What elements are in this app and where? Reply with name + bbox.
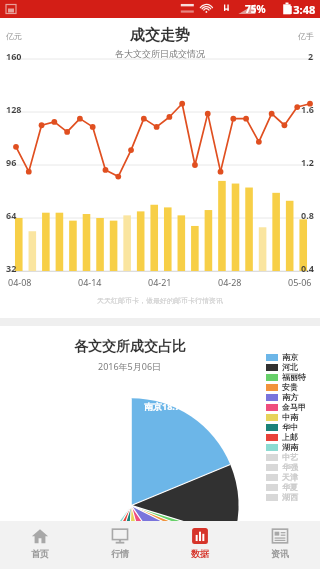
staticText: 南京18.77% (144, 400, 194, 412)
staticText: 2016年5月06日 (98, 360, 162, 372)
staticText: 13:48 (287, 2, 316, 17)
staticText: 行情 (111, 548, 129, 559)
staticText: 128 (6, 103, 22, 115)
staticText: 75% (245, 2, 266, 16)
staticText: 64 (6, 209, 17, 221)
staticText: 上邮 (282, 432, 298, 442)
staticText: 160 (6, 50, 22, 62)
staticText: 05-06 (288, 276, 312, 288)
staticText: 各文交所成交占比 (74, 338, 186, 356)
staticText: 成交走势 (130, 26, 190, 45)
staticText: 中南 (282, 412, 298, 422)
staticText: 0.4 (301, 262, 314, 274)
staticText: 华强 (282, 462, 298, 472)
staticText: 湖西 (282, 492, 298, 502)
staticText: 华夏 (282, 482, 298, 492)
staticText: 32 (6, 262, 17, 274)
staticText: 亿元 (6, 31, 22, 41)
staticText: 金马甲 (282, 402, 306, 412)
staticText: 华中 (282, 422, 298, 432)
staticText: 资讯 (271, 548, 289, 559)
staticText: 安贵 (282, 382, 298, 392)
staticText: 0.8 (301, 209, 314, 221)
button[interactable]: 首页 (0, 521, 80, 569)
staticText: 1.2 (301, 156, 314, 168)
staticText: 04-08 (8, 276, 32, 288)
staticText: 亿手 (298, 31, 314, 41)
staticText: 1.6 (301, 103, 314, 115)
staticText: 96 (6, 156, 17, 168)
staticText: 湖南 (282, 442, 298, 452)
staticText: 04-28 (218, 276, 242, 288)
staticText: 福丽特 (282, 372, 306, 382)
button[interactable]: 资讯 (240, 521, 320, 569)
staticText: 首页 (31, 548, 49, 559)
staticText: 2 (308, 50, 314, 62)
button[interactable]: 数据 (160, 521, 240, 569)
staticText: 南京 (282, 352, 298, 362)
staticText: 中艺 (282, 452, 298, 462)
staticText: 各大文交所日成交情况 (115, 48, 205, 59)
staticText: 天天红邮币卡，做最好的邮币卡行情资讯 (97, 296, 223, 305)
staticText: 04-14 (78, 276, 102, 288)
staticText: 南方 (282, 392, 298, 402)
button[interactable]: 行情 (80, 521, 160, 569)
staticText: 数据 (191, 548, 209, 559)
staticText: 天津 (282, 472, 298, 482)
staticText: 河北 (282, 362, 298, 372)
staticText: 04-21 (148, 276, 172, 288)
